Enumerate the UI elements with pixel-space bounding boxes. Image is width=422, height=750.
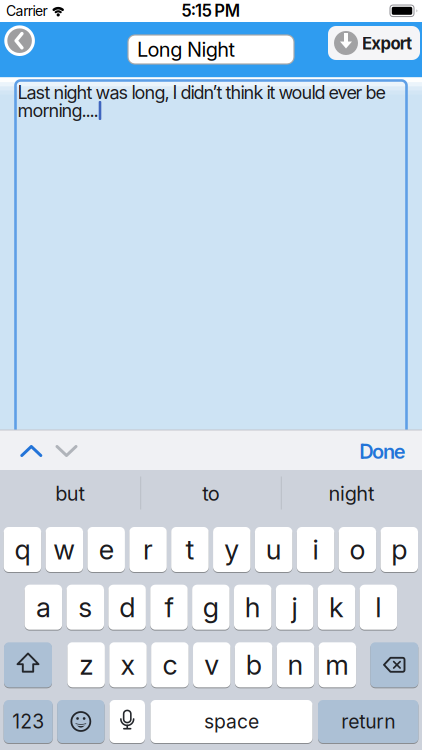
- button[interactable]: Previous field: [19, 444, 44, 457]
- staticText: g: [203, 591, 219, 624]
- button[interactable]: a: [25, 584, 62, 631]
- staticText: s: [78, 591, 92, 624]
- button[interactable]: n: [277, 641, 314, 688]
- staticText: f: [164, 591, 173, 624]
- button[interactable]: Title: [128, 35, 294, 64]
- button[interactable]: z: [67, 641, 105, 688]
- staticText: Last night was long, I didn’t think it w…: [17, 82, 385, 103]
- staticText: n: [287, 648, 303, 681]
- button[interactable]: r: [129, 526, 167, 573]
- staticText: morning....: [17, 100, 98, 121]
- staticText: z: [79, 648, 93, 681]
- staticText: c: [162, 648, 177, 681]
- staticText: e: [99, 533, 114, 566]
- button[interactable]: night: [283, 470, 421, 517]
- button[interactable]: Done: [359, 439, 406, 464]
- button[interactable]: j: [276, 584, 313, 631]
- staticText: p: [391, 533, 407, 566]
- button[interactable]: e: [87, 526, 125, 573]
- button[interactable]: b: [235, 641, 272, 688]
- button[interactable]: Export: [328, 26, 420, 60]
- staticText: l: [375, 591, 381, 624]
- button[interactable]: g: [192, 584, 230, 631]
- staticText: a: [36, 591, 51, 624]
- button[interactable]: s: [66, 584, 104, 631]
- button[interactable]: f: [150, 584, 188, 631]
- button[interactable]: Next field: [54, 444, 79, 457]
- button[interactable]: d: [108, 584, 146, 631]
- staticText: r: [143, 533, 153, 566]
- staticText: t: [185, 533, 194, 566]
- staticText: j: [292, 591, 298, 624]
- staticText: y: [224, 533, 239, 566]
- button[interactable]: v: [193, 641, 230, 688]
- staticText: x: [120, 648, 135, 681]
- staticText: d: [119, 591, 135, 624]
- button[interactable]: Delete: [370, 641, 418, 688]
- staticText: return: [341, 710, 395, 733]
- staticText: but: [55, 481, 85, 506]
- staticText: o: [349, 533, 365, 566]
- staticText: b: [246, 648, 262, 681]
- staticText: Long Night: [137, 37, 236, 62]
- button[interactable]: p: [380, 526, 418, 573]
- button[interactable]: t: [171, 526, 209, 573]
- button[interactable]: return: [318, 699, 418, 744]
- button[interactable]: y: [213, 526, 250, 573]
- button[interactable]: Back: [4, 25, 35, 56]
- button[interactable]: u: [255, 526, 292, 573]
- staticText: to: [202, 481, 220, 506]
- staticText: 5:15 PM: [181, 1, 240, 21]
- button[interactable]: h: [234, 584, 271, 631]
- staticText: Export: [362, 33, 412, 54]
- button[interactable]: m: [319, 641, 356, 688]
- button[interactable]: Dictate: [109, 699, 145, 744]
- button[interactable]: to: [142, 470, 280, 517]
- button[interactable]: space: [150, 699, 312, 744]
- button[interactable]: k: [318, 584, 355, 631]
- button[interactable]: but: [1, 470, 139, 517]
- button[interactable]: q: [4, 526, 41, 573]
- button[interactable]: 123: [4, 699, 53, 744]
- button[interactable]: i: [297, 526, 334, 573]
- staticText: night: [328, 481, 375, 506]
- staticText: m: [325, 648, 349, 681]
- button[interactable]: c: [151, 641, 189, 688]
- button[interactable]: w: [46, 526, 83, 573]
- staticText: u: [266, 533, 282, 566]
- staticText: k: [329, 591, 344, 624]
- staticText: Carrier: [6, 2, 48, 19]
- button[interactable]: l: [360, 584, 397, 631]
- staticText: w: [53, 533, 75, 566]
- staticText: i: [312, 533, 318, 566]
- staticText: Done: [359, 439, 406, 464]
- button[interactable]: Emoji: [57, 699, 104, 744]
- staticText: space: [204, 710, 259, 733]
- button[interactable]: o: [339, 526, 376, 573]
- staticText: h: [245, 591, 261, 624]
- button[interactable]: x: [109, 641, 147, 688]
- button[interactable]: Shift: [4, 641, 52, 688]
- staticText: q: [14, 533, 30, 566]
- staticText: v: [204, 648, 219, 681]
- staticText: 123: [12, 710, 44, 733]
